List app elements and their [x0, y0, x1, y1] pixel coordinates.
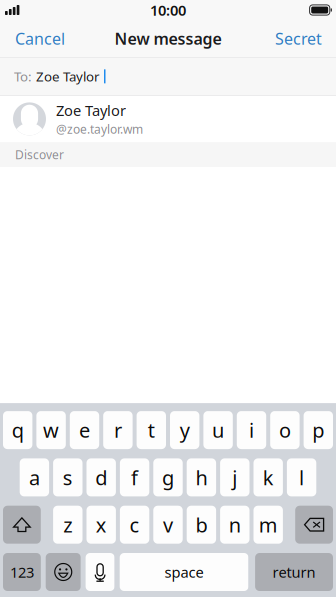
staticText: f	[131, 464, 138, 491]
button[interactable]: Delete	[295, 506, 333, 544]
staticText: To:	[14, 67, 32, 85]
button[interactable]: Zoe Taylor	[0, 96, 336, 142]
staticText: Zoe Taylor	[36, 67, 100, 85]
button[interactable]: x	[86, 506, 116, 544]
staticText: x	[96, 511, 107, 538]
button[interactable]: r	[103, 411, 133, 449]
staticText: y	[180, 417, 190, 443]
button[interactable]: return	[255, 553, 333, 591]
button[interactable]: Emoji	[46, 553, 81, 591]
button[interactable]: f	[120, 458, 149, 496]
staticText: w	[43, 417, 59, 443]
button[interactable]: b	[187, 506, 216, 544]
staticText: o	[279, 417, 291, 443]
staticText: @zoe.taylor.wm	[56, 121, 143, 137]
staticText: e	[79, 417, 90, 443]
button[interactable]: h	[187, 458, 216, 496]
staticText: n	[229, 511, 241, 538]
button[interactable]: a	[20, 458, 49, 496]
button[interactable]: o	[270, 411, 300, 449]
button[interactable]: c	[120, 506, 149, 544]
button[interactable]: i	[237, 411, 266, 449]
staticText: return	[273, 562, 316, 582]
button[interactable]: e	[70, 411, 99, 449]
staticText: t	[148, 417, 155, 443]
button[interactable]: d	[86, 458, 116, 496]
staticText: d	[95, 464, 107, 491]
staticText: s	[63, 464, 73, 491]
button[interactable]: Shift	[3, 506, 41, 544]
button[interactable]: w	[36, 411, 66, 449]
staticText: j	[232, 464, 237, 491]
staticText: b	[195, 511, 207, 538]
staticText: m	[259, 511, 278, 538]
button[interactable]: Cancel	[0, 20, 80, 57]
button[interactable]: j	[220, 458, 249, 496]
button[interactable]: s	[53, 458, 82, 496]
staticText: i	[249, 417, 254, 443]
button[interactable]: l	[287, 458, 316, 496]
staticText: p	[312, 417, 324, 443]
button[interactable]: space	[120, 553, 248, 591]
button[interactable]: Dictate	[86, 553, 115, 591]
staticText: v	[163, 511, 173, 538]
button[interactable]: Secret	[261, 20, 336, 57]
staticText: g	[162, 464, 174, 491]
staticText: New message	[114, 28, 221, 49]
staticText: r	[114, 417, 122, 443]
staticText: a	[29, 464, 40, 491]
staticText: space	[165, 562, 204, 582]
staticText: 123	[10, 562, 34, 582]
button[interactable]: m	[253, 506, 283, 544]
staticText: l	[299, 464, 304, 491]
staticText: h	[195, 464, 207, 491]
staticText: 10:00	[150, 0, 186, 20]
staticText: Zoe Taylor	[56, 101, 126, 120]
staticText: k	[263, 464, 274, 491]
button[interactable]: u	[203, 411, 233, 449]
button[interactable]: n	[220, 506, 249, 544]
staticText: z	[63, 511, 72, 538]
button[interactable]: t	[137, 411, 166, 449]
button[interactable]: q	[3, 411, 32, 449]
staticText: Discover	[15, 147, 64, 162]
button[interactable]: y	[170, 411, 199, 449]
staticText: c	[130, 511, 140, 538]
button[interactable]: v	[153, 506, 183, 544]
button[interactable]: p	[304, 411, 333, 449]
button[interactable]: 123	[3, 553, 41, 591]
staticText: q	[12, 417, 24, 443]
staticText: u	[212, 417, 224, 443]
staticText: Secret	[275, 28, 322, 49]
button[interactable]: k	[253, 458, 283, 496]
button[interactable]: g	[153, 458, 183, 496]
staticText: Cancel	[15, 28, 65, 49]
button[interactable]: z	[53, 506, 82, 544]
